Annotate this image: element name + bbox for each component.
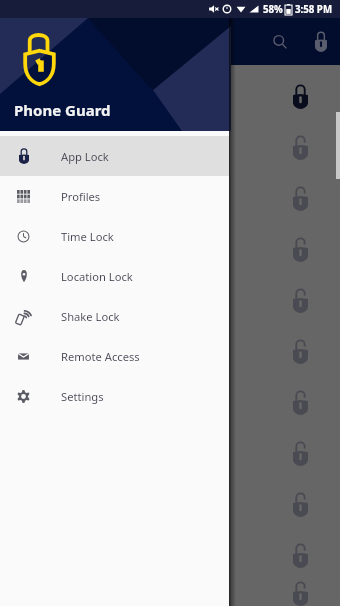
button[interactable]: Settings bbox=[0, 376, 229, 416]
button[interactable]: Toggle lock bbox=[283, 283, 317, 317]
staticText: Profiles bbox=[61, 189, 101, 204]
button[interactable]: Toggle lock bbox=[283, 232, 317, 266]
button[interactable]: Toggle lock bbox=[283, 79, 317, 113]
button[interactable]: Lock all apps bbox=[300, 18, 340, 65]
button[interactable]: Toggle lock bbox=[283, 580, 317, 606]
staticText: Settings bbox=[61, 389, 104, 404]
staticText: Remote Access bbox=[61, 349, 140, 364]
staticText: 58% bbox=[263, 3, 283, 16]
button[interactable]: Toggle lock bbox=[283, 487, 317, 521]
button[interactable]: Toggle lock bbox=[0, 121, 340, 172]
button[interactable]: Toggle lock bbox=[283, 385, 317, 419]
button[interactable]: Toggle lock bbox=[0, 580, 340, 606]
button[interactable]: Remote Access bbox=[0, 336, 229, 376]
button[interactable]: Toggle lock bbox=[0, 70, 340, 121]
button[interactable]: Toggle lock bbox=[0, 478, 340, 529]
staticText: Location Lock bbox=[61, 269, 133, 284]
button[interactable]: Toggle lock bbox=[283, 130, 317, 164]
staticText: App Lock bbox=[61, 149, 109, 164]
button[interactable]: Time Lock bbox=[0, 216, 229, 256]
button[interactable]: Toggle lock bbox=[283, 436, 317, 470]
button[interactable]: Shake Lock bbox=[0, 296, 229, 336]
button[interactable]: App Lock bbox=[0, 136, 229, 176]
button[interactable]: Toggle lock bbox=[0, 529, 340, 580]
button[interactable]: Toggle lock bbox=[283, 538, 317, 572]
button[interactable]: Toggle lock bbox=[0, 172, 340, 223]
button[interactable]: Search bbox=[259, 18, 301, 65]
staticText: 3:58 PM bbox=[295, 3, 333, 16]
button[interactable]: Toggle lock bbox=[283, 334, 317, 368]
button[interactable]: Toggle lock bbox=[0, 427, 340, 478]
staticText: Phone Guard bbox=[14, 100, 111, 120]
button[interactable]: Profiles bbox=[0, 176, 229, 216]
button[interactable]: Toggle lock bbox=[0, 223, 340, 274]
staticText: Time Lock bbox=[61, 229, 114, 244]
button[interactable]: Toggle lock bbox=[0, 376, 340, 427]
button[interactable]: Toggle lock bbox=[0, 274, 340, 325]
button[interactable]: Toggle lock bbox=[283, 181, 317, 215]
staticText: Shake Lock bbox=[61, 309, 120, 324]
button[interactable]: Toggle lock bbox=[0, 325, 340, 376]
button[interactable]: Location Lock bbox=[0, 256, 229, 296]
